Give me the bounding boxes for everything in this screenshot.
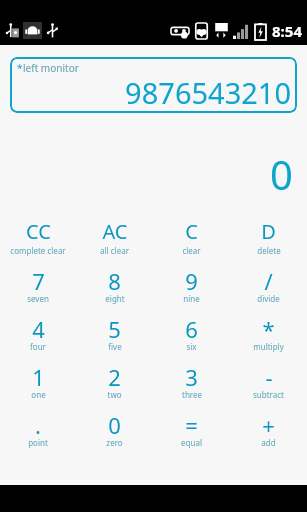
staticText: nine	[183, 293, 200, 304]
staticText: divide	[257, 293, 280, 304]
staticText: 0	[108, 410, 121, 436]
button[interactable]: CC	[0, 213, 76, 261]
staticText: five	[108, 341, 122, 352]
staticText: delete	[257, 245, 281, 256]
staticText: 5	[108, 314, 121, 340]
button[interactable]: 8	[76, 261, 153, 309]
staticText: *	[17, 61, 23, 75]
button[interactable]: *	[230, 309, 307, 357]
staticText: 7	[32, 266, 45, 292]
staticText: seven	[27, 293, 49, 304]
button[interactable]: AC	[76, 213, 153, 261]
button[interactable]: 5	[76, 309, 153, 357]
button[interactable]: 0	[76, 405, 153, 453]
button[interactable]: 7	[0, 261, 76, 309]
staticText: 8	[108, 266, 121, 292]
staticText: =	[185, 410, 198, 436]
button[interactable]: -	[230, 357, 307, 405]
staticText: D	[261, 218, 276, 244]
staticText: AC	[102, 218, 128, 244]
staticText: .	[35, 410, 41, 436]
staticText: 9876543210	[125, 73, 291, 112]
button[interactable]: C	[153, 213, 230, 261]
button[interactable]: /	[230, 261, 307, 309]
button[interactable]: 3	[153, 357, 230, 405]
button[interactable]: 9	[153, 261, 230, 309]
staticText: +	[262, 410, 275, 436]
button[interactable]: *	[10, 57, 297, 113]
button[interactable]: 1	[0, 357, 76, 405]
button[interactable]: =	[153, 405, 230, 453]
staticText: eight	[105, 293, 125, 304]
staticText: 2	[108, 362, 121, 388]
staticText: 8:54	[272, 21, 302, 41]
staticText: two	[107, 389, 122, 400]
staticText: four	[30, 341, 46, 352]
staticText: multiply	[253, 341, 284, 352]
staticText: /	[264, 266, 273, 292]
staticText: left monitor	[23, 61, 79, 75]
staticText: add	[261, 437, 276, 448]
staticText: 9	[185, 266, 198, 292]
staticText: three	[182, 389, 202, 400]
staticText: 6	[185, 314, 198, 340]
staticText: clear	[182, 245, 201, 256]
staticText: 1	[32, 362, 45, 388]
button[interactable]: .	[0, 405, 76, 453]
button[interactable]: 2	[76, 357, 153, 405]
staticText: 3	[185, 362, 198, 388]
staticText: *	[262, 314, 275, 340]
staticText: zero	[106, 437, 123, 448]
staticText: equal	[181, 437, 202, 448]
staticText: point	[28, 437, 48, 448]
staticText: six	[186, 341, 197, 352]
staticText: 0	[270, 147, 293, 191]
staticText: all clear	[100, 245, 129, 256]
staticText: C	[185, 218, 198, 244]
staticText: 4	[32, 314, 45, 340]
staticText: one	[31, 389, 46, 400]
button[interactable]: 6	[153, 309, 230, 357]
staticText: CC	[26, 218, 51, 244]
staticText: subtract	[253, 389, 284, 400]
button[interactable]: 4	[0, 309, 76, 357]
staticText: complete clear	[10, 245, 66, 256]
staticText: -	[265, 362, 273, 388]
button[interactable]: +	[230, 405, 307, 453]
button[interactable]: D	[230, 213, 307, 261]
